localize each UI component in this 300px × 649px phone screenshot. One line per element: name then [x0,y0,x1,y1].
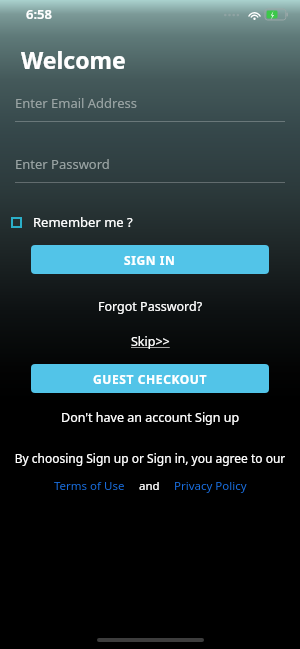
staticText: Welcome [21,44,126,75]
staticText: Enter Email Address [15,94,137,112]
button[interactable]: Privacy Policy [170,476,251,496]
staticText: Privacy Policy [174,478,247,494]
staticText: Forgot Password? [98,298,203,315]
staticText: GUEST CHECKOUT [93,371,208,387]
button[interactable]: SIGN IN [31,245,269,274]
button[interactable]: Enter Email Address [0,94,300,122]
button[interactable]: GUEST CHECKOUT [31,364,269,393]
staticText: Enter Password [15,155,110,173]
staticText: Terms of Use [54,478,125,494]
button[interactable]: Don't have an account Sign up [53,407,248,428]
staticText: SIGN IN [124,252,176,268]
button[interactable]: Forgot Password? [90,296,211,317]
staticText: 6:58 [26,5,52,23]
staticText: and [139,478,160,494]
button[interactable]: Remember me ? [0,211,143,233]
staticText: Don't have an account Sign up [61,409,240,426]
staticText: By choosing Sign up or Sign in, you agre… [0,450,300,466]
staticText: Skip>> [131,333,170,350]
button[interactable]: Enter Password [0,155,300,183]
button[interactable]: Terms of Use [50,476,129,496]
button[interactable]: Skip>> [123,331,178,352]
staticText: Remember me ? [33,213,133,231]
other: Home indicator [97,638,204,642]
